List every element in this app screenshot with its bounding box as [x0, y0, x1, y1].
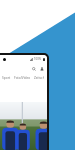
button[interactable]: Search — [30, 65, 38, 73]
staticText: 100% — [34, 57, 42, 61]
button[interactable]: Account — [38, 65, 46, 73]
staticText: Zeitsch — [34, 76, 44, 80]
button[interactable]: Foto/Video — [14, 76, 31, 80]
staticText: Foto/Video — [14, 76, 31, 80]
button[interactable]: Zeitsch — [34, 76, 44, 80]
button[interactable]: Sport — [2, 76, 11, 80]
staticText: Sport — [2, 76, 11, 80]
